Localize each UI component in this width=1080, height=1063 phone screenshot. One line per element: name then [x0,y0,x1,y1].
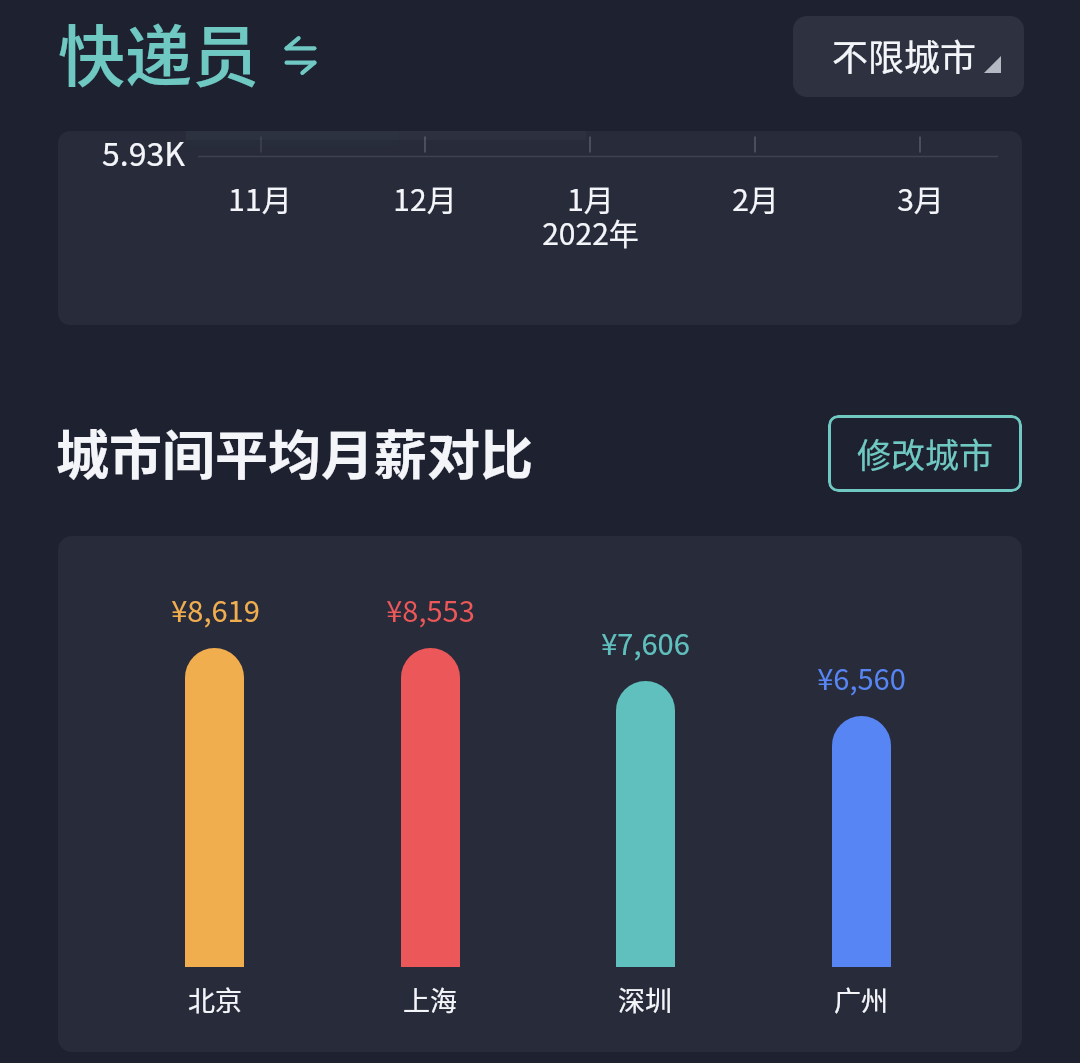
button[interactable]: 修改城市 [828,415,1022,492]
staticText: ¥6,560 [817,656,906,698]
button[interactable]: 快递员 [58,3,259,89]
button[interactable]: Switch occupation [280,35,320,75]
staticText: 2月 [732,176,779,219]
staticText: 上海 [403,980,457,1019]
staticText: 不限城市 [832,29,977,81]
staticText: ¥8,553 [386,588,475,630]
staticText: 11月 [228,176,292,219]
staticText: 深圳 [618,980,672,1019]
button[interactable] [115,588,315,1022]
staticText: 城市间平均月薪对比 [56,414,533,491]
button[interactable] [330,588,530,1022]
button[interactable] [545,621,745,1022]
staticText: 修改城市 [857,429,993,478]
staticText: 5.93K [102,131,185,175]
staticText: 12月 [393,176,457,219]
button[interactable]: 不限城市 [793,16,1024,97]
staticText: 1月 [567,176,614,219]
staticText: 广州 [834,980,888,1019]
button[interactable] [761,656,961,1022]
staticText: ¥8,619 [171,588,260,630]
staticText: 2022年 [542,210,639,253]
staticText: ¥7,606 [601,621,690,663]
staticText: 北京 [188,980,242,1019]
staticText: 3月 [897,176,944,219]
